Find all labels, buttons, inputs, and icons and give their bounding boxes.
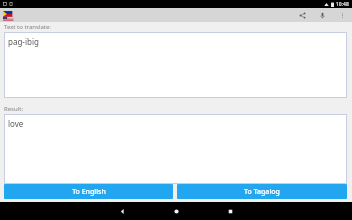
staticText: pag-ibig: [8, 36, 39, 47]
button[interactable]: To Tagalog: [177, 184, 347, 199]
button[interactable]: To English: [4, 184, 173, 199]
button[interactable]: Share: [297, 10, 308, 21]
button[interactable]: Home: [156, 202, 196, 220]
staticText: To Tagalog: [244, 187, 280, 197]
staticText: Result:: [4, 105, 24, 113]
button[interactable]: Recent apps: [210, 202, 250, 220]
button[interactable]: More options: [337, 10, 348, 21]
staticText: 10:48: [336, 1, 349, 8]
staticText: love: [8, 118, 24, 129]
button[interactable]: Back: [102, 202, 142, 220]
button[interactable]: pag-ibig: [4, 32, 347, 98]
button[interactable]: Voice input: [317, 10, 328, 21]
button[interactable]: App icon: [2, 10, 16, 21]
staticText: To English: [72, 187, 106, 197]
button[interactable]: love: [4, 114, 347, 184]
staticText: Text to translate:: [4, 23, 51, 31]
